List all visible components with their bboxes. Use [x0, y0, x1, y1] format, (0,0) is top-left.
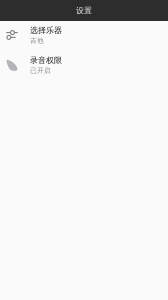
staticText: 吉他	[30, 36, 44, 44]
staticText: 已开启	[30, 66, 51, 74]
staticText: 录音权限	[30, 55, 62, 65]
button[interactable]: 选择乐器	[0, 20, 168, 50]
staticText: 选择乐器	[30, 25, 62, 35]
staticText: 设置	[76, 6, 92, 15]
button[interactable]: 录音权限	[0, 50, 168, 80]
